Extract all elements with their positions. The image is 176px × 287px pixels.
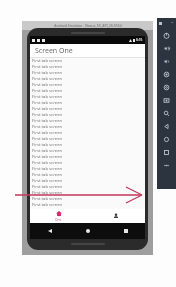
staticText: First tab screen	[32, 124, 63, 130]
button[interactable]: Overview	[157, 146, 176, 159]
button[interactable]: Home	[69, 223, 107, 239]
staticText: First tab screen	[32, 112, 63, 118]
button[interactable]: First tab screen	[30, 64, 145, 70]
button[interactable]: First tab screen	[30, 202, 145, 208]
button[interactable]: Volume down	[157, 55, 176, 68]
button[interactable]: Zoom	[157, 107, 176, 120]
staticText: One	[55, 218, 62, 222]
button[interactable]: Power	[157, 29, 176, 42]
staticText: First tab screen	[32, 190, 63, 196]
staticText: First tab screen	[32, 196, 63, 202]
button[interactable]: First tab screen	[30, 106, 145, 112]
button[interactable]: First tab screen	[30, 130, 145, 136]
button[interactable]: First tab screen	[30, 172, 145, 178]
button[interactable]: Rotate left	[157, 68, 176, 81]
staticText: First tab screen	[32, 166, 63, 172]
staticText: Screen One	[35, 46, 73, 56]
staticText: First tab screen	[32, 130, 63, 136]
staticText: First tab screen	[32, 94, 63, 100]
button[interactable]: First tab screen	[30, 148, 145, 154]
button[interactable]: First tab screen	[30, 142, 145, 148]
button[interactable]: More	[157, 159, 176, 172]
button[interactable]: Home	[157, 133, 176, 146]
staticText: 6:15	[136, 38, 143, 42]
button[interactable]: First tab screen	[30, 88, 145, 94]
button[interactable]: First tab screen	[30, 112, 145, 118]
button[interactable]: First tab screen	[30, 100, 145, 106]
staticText: First tab screen	[32, 136, 63, 142]
staticText: First tab screen	[32, 118, 63, 124]
staticText: First tab screen	[32, 172, 63, 178]
button[interactable]: Rotate right	[157, 81, 176, 94]
button[interactable]: Back	[30, 223, 69, 239]
button[interactable]: Volume up	[157, 42, 176, 55]
button[interactable]: First tab screen	[30, 160, 145, 166]
button[interactable]: Account tab	[87, 209, 145, 223]
button[interactable]: First tab screen	[30, 178, 145, 184]
button[interactable]: First tab screen	[30, 70, 145, 76]
button[interactable]: First tab screen	[30, 94, 145, 100]
button[interactable]: First tab screen	[30, 136, 145, 142]
staticText: First tab screen	[32, 154, 63, 160]
staticText: First tab screen	[32, 160, 63, 166]
staticText: First tab screen	[32, 70, 63, 76]
button[interactable]: First tab screen	[30, 82, 145, 88]
button[interactable]: Back	[157, 120, 176, 133]
button[interactable]: Recents	[107, 223, 145, 239]
staticText: First tab screen	[32, 88, 63, 94]
staticText: ···	[171, 21, 174, 25]
button[interactable]: First tab screen	[30, 124, 145, 130]
button[interactable]: Home tab, selected	[30, 209, 87, 223]
staticText: First tab screen	[32, 64, 63, 70]
button[interactable]: First tab screen	[30, 166, 145, 172]
staticText: First tab screen	[32, 100, 63, 106]
staticText: First tab screen	[32, 76, 63, 82]
staticText: First tab screen	[32, 178, 63, 184]
button[interactable]: First tab screen	[30, 196, 145, 202]
staticText: Android Emulator - Nexus_5X_API_26:5554	[54, 23, 122, 28]
button[interactable]: First tab screen	[30, 184, 145, 190]
staticText: First tab screen	[32, 148, 63, 154]
staticText: First tab screen	[32, 142, 63, 148]
button[interactable]: Screenshot	[157, 94, 176, 107]
staticText: First tab screen	[32, 184, 63, 190]
staticText: First tab screen	[32, 202, 63, 208]
staticText: First tab screen	[32, 82, 63, 88]
staticText: First tab screen	[32, 58, 63, 64]
button[interactable]: First tab screen	[30, 190, 145, 196]
staticText: First tab screen	[32, 106, 63, 112]
button[interactable]: First tab screen	[30, 154, 145, 160]
button[interactable]: First tab screen	[30, 76, 145, 82]
button[interactable]: First tab screen	[30, 58, 145, 64]
button[interactable]: First tab screen	[30, 118, 145, 124]
